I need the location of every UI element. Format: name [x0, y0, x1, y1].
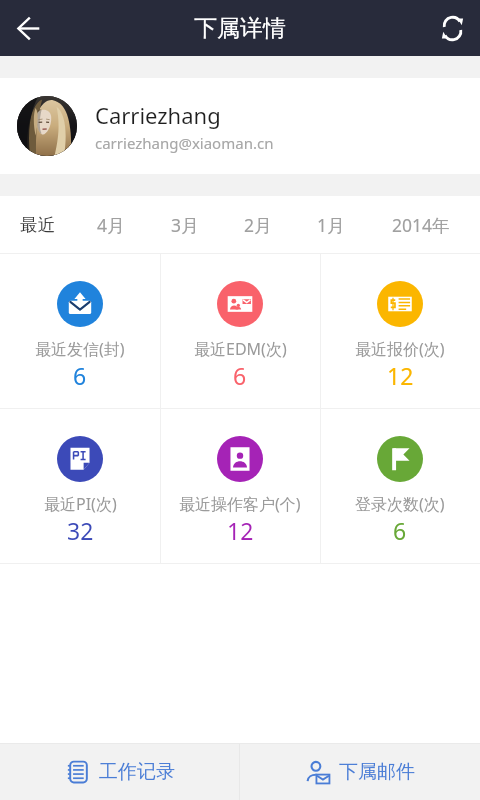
staticText: 3月	[171, 213, 199, 237]
staticText: Carriezhang	[95, 100, 221, 130]
button[interactable]: 最近PI(次)	[0, 409, 160, 563]
button[interactable]: 3月	[148, 196, 221, 253]
staticText: 6	[393, 515, 407, 546]
staticText: 1月	[317, 213, 345, 237]
staticText: 32	[67, 515, 94, 546]
button[interactable]: 工作记录	[0, 744, 239, 800]
button[interactable]: 4月	[74, 196, 148, 253]
button[interactable]: 最近报价(次)	[320, 254, 480, 408]
staticText: 登录次数(次)	[355, 493, 445, 515]
staticText: 6	[73, 360, 87, 391]
button[interactable]: 下属邮件	[240, 744, 480, 800]
staticText: 下属邮件	[339, 760, 415, 784]
button[interactable]: Back	[0, 0, 56, 56]
staticText: 最近报价(次)	[355, 338, 445, 360]
staticText: 最近PI(次)	[44, 493, 117, 515]
button[interactable]: 2月	[221, 196, 294, 253]
staticText: 6	[233, 360, 247, 391]
button[interactable]: 1月	[294, 196, 367, 253]
button[interactable]: 最近发信(封)	[0, 254, 160, 408]
button[interactable]: 最近操作客户(个)	[160, 409, 320, 563]
staticText: 2014年	[392, 213, 450, 237]
staticText: 工作记录	[99, 760, 175, 784]
staticText: 下属详情	[194, 14, 286, 43]
staticText: carriezhang@xiaoman.cn	[95, 133, 274, 153]
staticText: 最近操作客户(个)	[179, 493, 301, 515]
staticText: 2月	[244, 213, 272, 237]
staticText: 最近	[20, 214, 55, 236]
staticText: 12	[227, 515, 254, 546]
button[interactable]: Refresh	[424, 0, 480, 56]
staticText: 最近发信(封)	[35, 338, 125, 360]
staticText: 4月	[97, 213, 125, 237]
button[interactable]: 2014年	[367, 196, 474, 253]
button[interactable]: Carriezhang	[0, 78, 480, 174]
button[interactable]: 最近EDM(次)	[160, 254, 320, 408]
button[interactable]: 最近	[0, 196, 74, 253]
staticText: 最近EDM(次)	[194, 338, 287, 360]
staticText: 12	[387, 360, 414, 391]
button[interactable]: 登录次数(次)	[320, 409, 480, 563]
